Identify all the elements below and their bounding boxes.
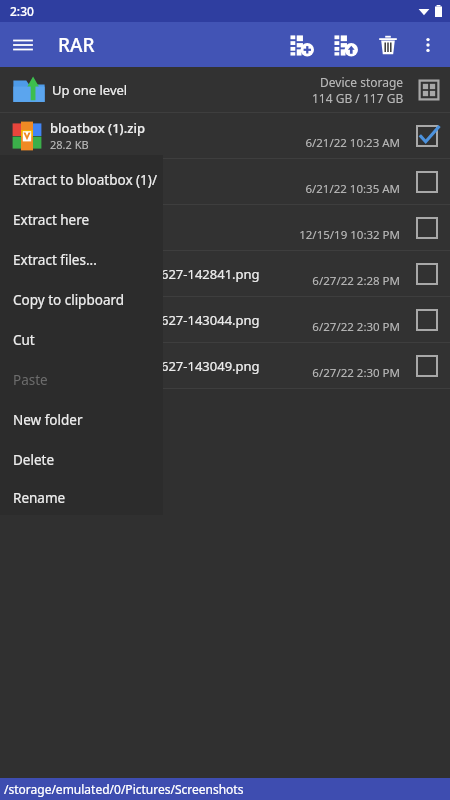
button[interactable]: Screenshot_20220627-143044.png [0,297,450,342]
button[interactable]: Not selected [410,211,444,245]
staticText: 6/21/22 10:23 AM [305,135,400,151]
staticText: 12/15/19 10:32 PM [299,227,400,243]
button[interactable]: Screenshot_2022 [0,159,450,204]
button[interactable]: Extract archive [324,23,368,67]
button[interactable]: Not selected [410,257,444,291]
button[interactable]: Selected [410,119,444,153]
staticText: RAR [58,32,95,58]
staticText: Device storage [320,74,404,90]
staticText: Cut [13,331,35,349]
button[interactable]: Cut [0,320,163,360]
button[interactable]: Not selected [410,165,444,199]
button[interactable]: Extract files... [0,240,163,280]
button[interactable]: New folder [0,400,163,440]
button[interactable]: Extract to bloatbox (1)/ [0,160,163,200]
button[interactable]: Not selected [410,349,444,383]
button[interactable]: Paste [0,360,163,400]
button[interactable]: bloatbox (1).zip [0,113,450,158]
button[interactable]: Screenshot_20220627-142841.png [0,251,450,296]
button[interactable]: Up one level [0,67,450,112]
button[interactable]: Screenshot_20220627-143049.png [0,343,450,388]
staticText: /storage/emulated/0/Pictures/Screenshots [4,781,244,797]
button[interactable]: Not selected [410,303,444,337]
staticText: Screenshot_20220627-143044.png [50,311,260,329]
staticText: 6/21/22 10:35 AM [305,181,400,197]
button[interactable]: Extract here [0,200,163,240]
staticText: Screenshot_20220627-142841.png [50,265,260,283]
staticText: 6/27/22 2:30 PM [312,319,400,335]
staticText: Paste [13,371,48,389]
staticText: 2:30 [10,3,34,19]
staticText: New folder [13,411,83,429]
staticText: Screenshot_2022 [50,173,154,191]
staticText: Extract files... [13,251,97,269]
button[interactable]: Screenshot_2019 [0,205,450,250]
staticText: Screenshot_2019 [50,219,154,237]
staticText: Copy to clipboard [13,291,125,309]
staticText: 28.2 KB [50,137,89,152]
staticText: Delete [13,451,55,469]
staticText: 6/27/22 2:30 PM [312,365,400,381]
staticText: 6/27/22 2:28 PM [312,273,400,289]
button[interactable]: Rename [0,480,163,515]
staticText: Extract to bloatbox (1)/ [13,171,157,189]
button[interactable]: Add to archive [280,23,324,67]
button[interactable]: More options [408,25,448,65]
staticText: Extract here [13,211,90,229]
staticText: Up one level [52,81,128,99]
button[interactable]: Open navigation menu [0,22,46,67]
staticText: Screenshot_20220627-143049.png [50,357,260,375]
button[interactable]: Delete [0,440,163,480]
staticText: 114 GB / 117 GB [312,90,404,106]
button[interactable]: Copy to clipboard [0,280,163,320]
staticText: Rename [13,489,66,507]
button[interactable]: Change view [414,75,444,105]
staticText: bloatbox (1).zip [50,119,145,137]
button[interactable]: Delete [368,25,408,65]
